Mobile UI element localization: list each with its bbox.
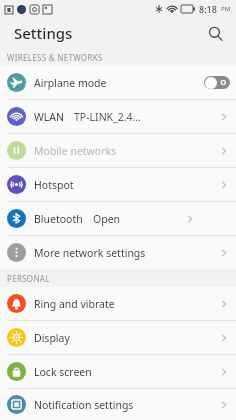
staticText: Open (93, 212, 121, 226)
staticText: Bluetooth (34, 212, 83, 226)
staticText: More network settings (34, 246, 146, 260)
button[interactable]: Search (202, 20, 228, 46)
button[interactable]: Lock screen (0, 355, 236, 388)
button[interactable]: Notification settings (0, 389, 236, 420)
staticText: Ring and vibrate (34, 297, 115, 311)
staticText: TP-LINK_2.4GHz_BA4FDE (74, 110, 146, 124)
button[interactable]: Bluetooth (0, 202, 236, 235)
staticText: 8:18 (199, 3, 217, 15)
staticText: Settings (14, 23, 73, 43)
staticText: Hotspot (34, 178, 74, 192)
staticText: WIRELESS & NETWORKS (7, 52, 103, 63)
button[interactable]: Airplane mode (0, 66, 236, 99)
button[interactable]: Ring and vibrate (0, 287, 236, 320)
button[interactable]: WLAN (0, 100, 236, 133)
staticText: PM (221, 5, 231, 13)
staticText: WLAN (34, 110, 64, 124)
staticText: Lock screen (34, 365, 92, 379)
button[interactable]: Hotspot (0, 168, 236, 201)
staticText: Mobile networks (34, 144, 117, 158)
staticText: Airplane mode (34, 76, 107, 90)
staticText: PERSONAL (7, 273, 50, 284)
button[interactable]: Mobile networks (0, 134, 236, 167)
button[interactable]: More network settings (0, 236, 236, 269)
button[interactable]: Display (0, 321, 236, 354)
button[interactable]: Airplane mode toggle (204, 76, 230, 89)
staticText: Display (34, 331, 70, 345)
staticText: Notification settings (34, 398, 134, 412)
